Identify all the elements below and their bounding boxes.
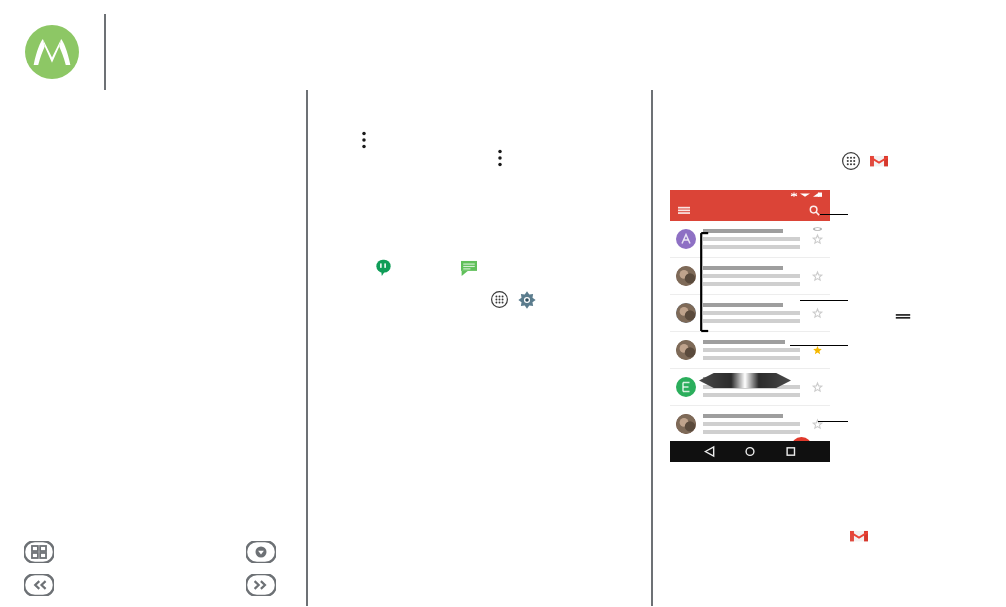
button[interactable]: Hangouts: [375, 259, 392, 276]
button[interactable]: [670, 258, 830, 294]
button[interactable]: [670, 406, 830, 441]
button[interactable]: Navigation: [24, 574, 54, 596]
button[interactable]: More options: [496, 148, 504, 168]
button[interactable]: [670, 221, 830, 257]
button[interactable]: Menu: [678, 205, 690, 215]
button[interactable]: Navigation: [24, 541, 54, 563]
button[interactable]: Menu: [895, 308, 911, 324]
button[interactable]: Gmail: [870, 152, 888, 170]
button[interactable]: Settings: [518, 291, 536, 309]
button[interactable]: [670, 332, 830, 368]
button[interactable]: Motorola logo: [25, 25, 79, 79]
button[interactable]: Search: [809, 205, 820, 216]
button[interactable]: Compose: [791, 437, 812, 458]
button[interactable]: Navigation: [246, 574, 276, 596]
button[interactable]: Apps: [491, 291, 508, 308]
button[interactable]: Gmail: [850, 527, 868, 545]
button[interactable]: Navigation: [246, 541, 276, 563]
button[interactable]: Apps: [842, 152, 860, 170]
button[interactable]: [670, 295, 830, 331]
button[interactable]: Messages: [461, 260, 477, 276]
button[interactable]: More options: [360, 130, 368, 150]
button[interactable]: [670, 369, 830, 405]
